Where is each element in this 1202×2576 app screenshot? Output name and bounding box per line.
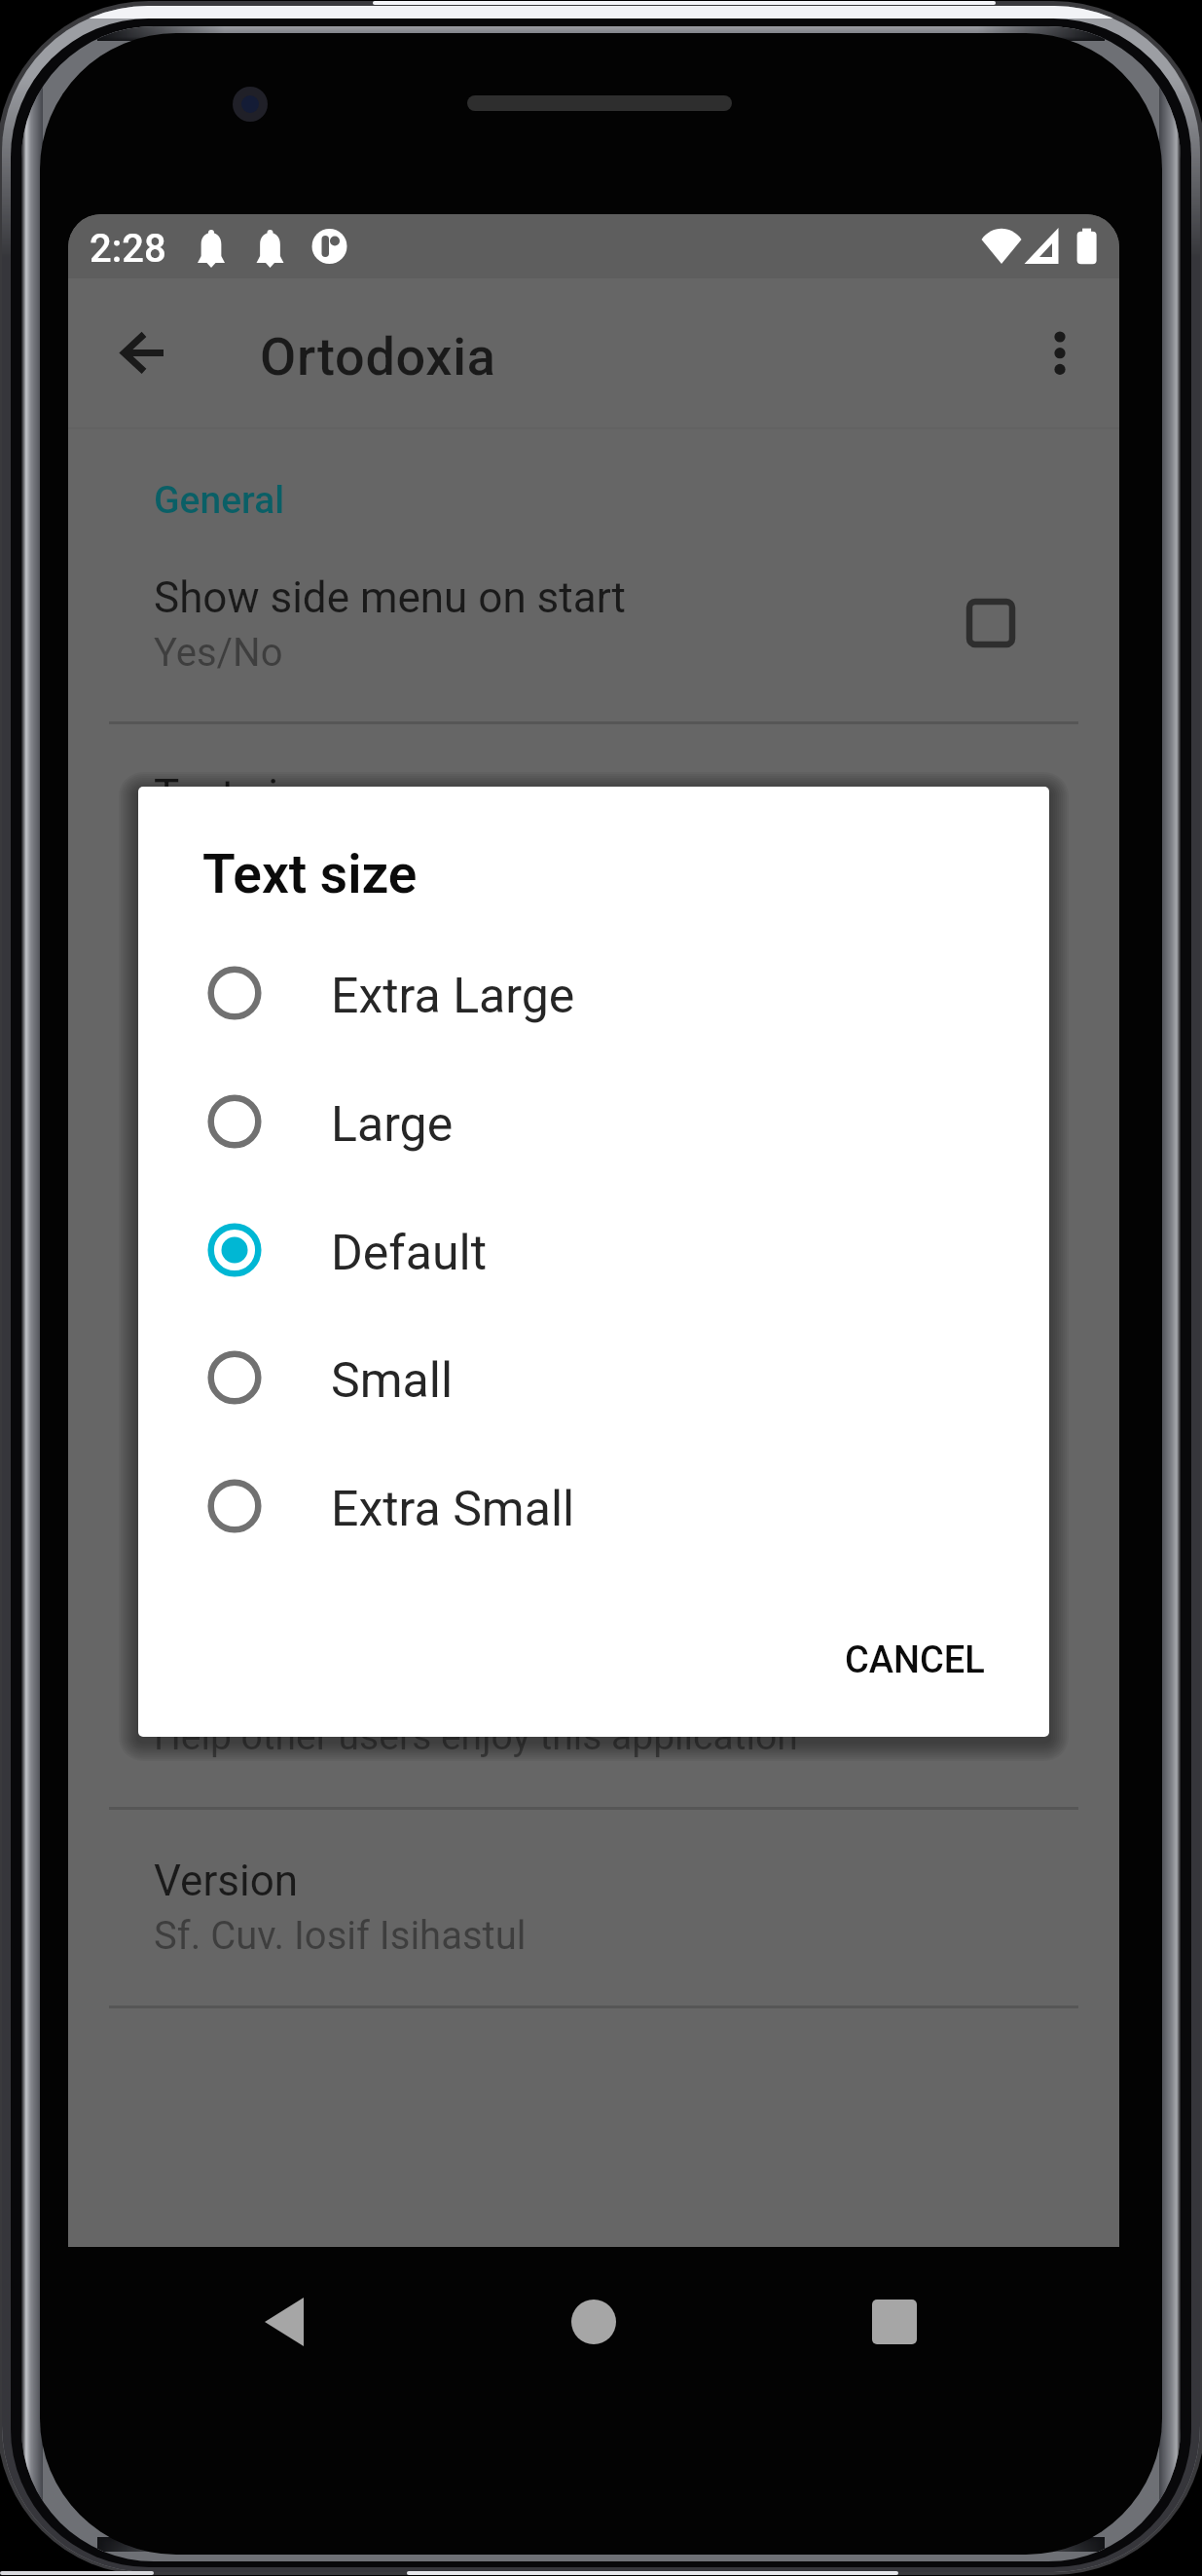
button[interactable]: Rate this application [68,1630,1119,1805]
staticText: Ortodoxia [260,326,496,387]
button[interactable]: Navigate up [123,306,216,399]
button[interactable]: Show side menu on start [68,545,1119,720]
staticText: Default [154,828,278,873]
button[interactable]: CANCEL [822,1611,1007,1709]
button[interactable]: More options [1013,306,1107,399]
staticText: Sf. Cuv. Iosif Isihastul [154,1913,527,1959]
staticText: General [154,478,285,523]
button[interactable]: Version [68,1828,1119,2004]
staticText: Extra Small [331,1481,575,1538]
button[interactable]: Small [138,1314,1049,1441]
staticText: Text size [154,770,322,821]
staticText: Text size [202,843,418,905]
staticText: Small [331,1352,454,1410]
staticText: Large [331,1096,454,1154]
button[interactable]: Text size [68,743,1119,918]
button[interactable]: Large [138,1058,1049,1185]
staticText: Show side menu on start [154,572,627,623]
staticText: Extra Large [331,968,575,1025]
button[interactable]: Extra Large [138,930,1049,1056]
staticText: Version [154,1856,299,1906]
button[interactable]: Default [138,1187,1049,1313]
staticText: Help other users enjoy this application [154,1714,798,1759]
staticText: CANCEL [845,1638,985,1682]
staticText: Yes/No [154,630,283,676]
staticText: 2:28 [90,226,166,272]
button[interactable]: Extra Small [138,1443,1049,1569]
staticText: Default [331,1225,487,1282]
